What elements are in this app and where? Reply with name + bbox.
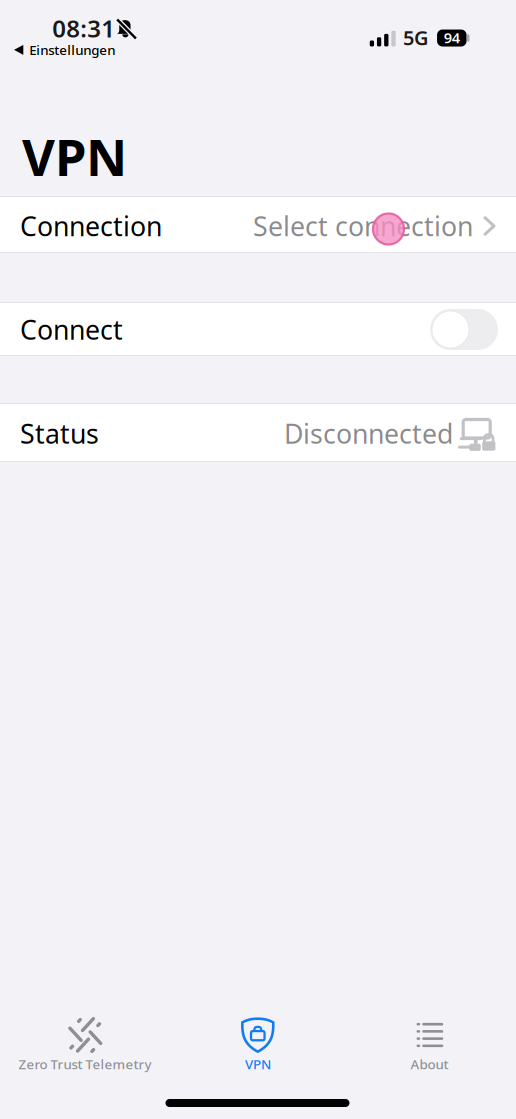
staticText: VPN <box>22 123 127 190</box>
staticText: Select connection <box>253 208 473 244</box>
staticText: Einstellungen <box>29 41 115 59</box>
button[interactable]: VPN <box>172 1000 344 1090</box>
staticText: Disconnected <box>284 416 453 451</box>
staticText: 5G <box>403 24 429 51</box>
staticText: About <box>410 1055 448 1073</box>
staticText: Connection <box>20 208 162 244</box>
button[interactable]: Zero Trust Telemetry <box>0 1000 172 1090</box>
staticText: Connect <box>20 312 123 347</box>
button[interactable]: Connection <box>0 196 516 253</box>
button[interactable]: Einstellungen <box>14 41 115 59</box>
staticText: Zero Trust Telemetry <box>18 1055 151 1073</box>
staticText: Status <box>20 416 99 451</box>
button[interactable]: About <box>344 1000 516 1090</box>
button[interactable]: Connect <box>430 309 498 350</box>
staticText: 08:31 <box>52 12 115 44</box>
staticText: 94 <box>444 28 460 47</box>
staticText: VPN <box>245 1055 271 1073</box>
